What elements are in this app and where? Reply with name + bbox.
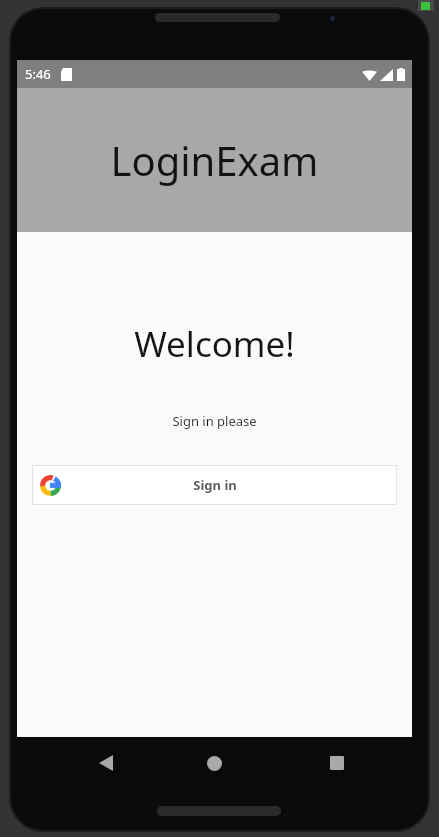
staticText: 5:46 <box>25 65 51 83</box>
button[interactable]: Recent apps <box>313 739 361 787</box>
staticText: Sign in please <box>172 412 257 430</box>
staticText: LoginExam <box>110 133 319 187</box>
button[interactable]: Home <box>190 739 238 787</box>
button[interactable]: Back <box>82 739 130 787</box>
staticText: Sign in <box>193 476 237 494</box>
button[interactable]: Sign in <box>32 465 397 505</box>
staticText: Welcome! <box>134 320 295 368</box>
